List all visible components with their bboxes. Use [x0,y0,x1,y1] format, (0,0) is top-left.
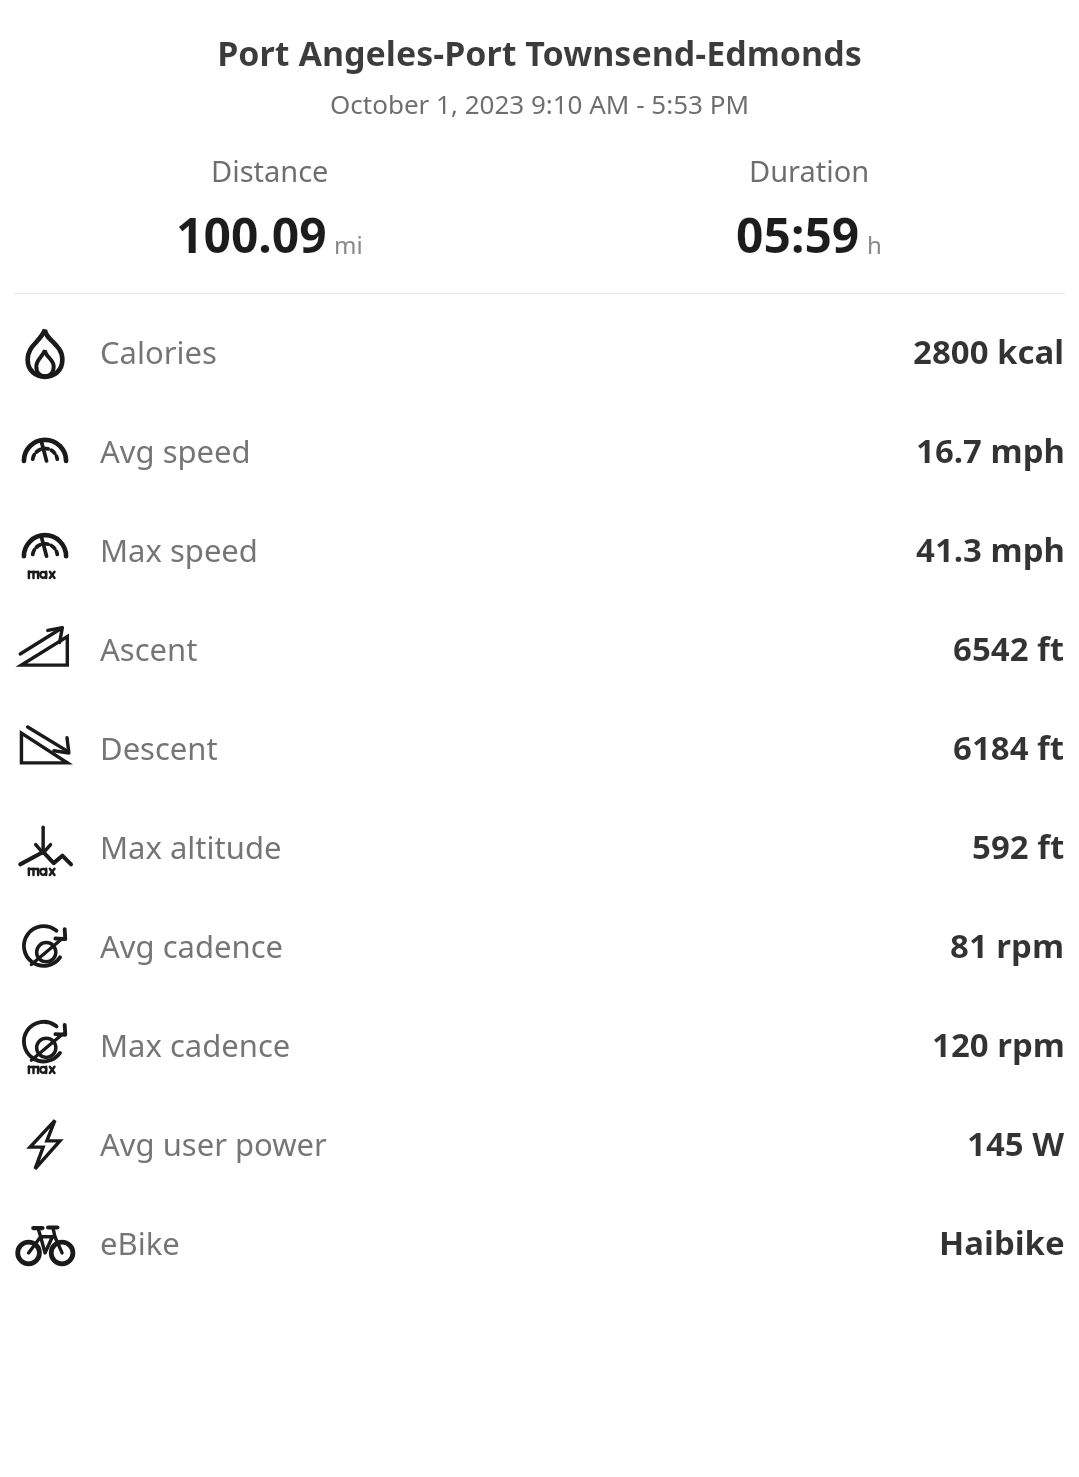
button[interactable]: Distance [0,151,539,267]
staticText: 05:59 [736,202,860,267]
staticText: 145 W [967,1121,1065,1166]
staticText: October 1, 2023 9:10 AM - 5:53 PM [14,86,1065,121]
other: Maximum altitude [14,816,76,878]
other: Calories [14,321,76,383]
button[interactable]: Descent [0,698,1079,797]
staticText: 16.7 mph [916,428,1065,473]
staticText: Max altitude [100,826,282,868]
staticText: Avg cadence [100,925,284,967]
staticText: Descent [100,727,218,769]
staticText: Max cadence [100,1024,291,1066]
staticText: 6542 ft [953,626,1065,671]
staticText: 2800 kcal [913,329,1065,374]
staticText: 592 ft [972,824,1065,869]
staticText: Duration [749,151,870,190]
button[interactable]: Average cadence [0,896,1079,995]
staticText: 41.3 mph [916,527,1065,572]
staticText: Avg user power [100,1123,327,1165]
staticText: Max speed [100,529,258,571]
staticText: h [867,228,882,261]
other: Ascent [14,618,76,680]
staticText: Avg speed [100,430,251,472]
button[interactable]: Duration [539,151,1079,267]
other: Average user power [14,1113,76,1175]
other: Maximum speed [14,519,76,581]
staticText: Port Angeles-Port Townsend-Edmonds [14,30,1065,76]
button[interactable]: Calories [0,302,1079,401]
button[interactable]: Maximum cadence [0,995,1079,1094]
other: Descent [14,717,76,779]
button[interactable]: Maximum altitude [0,797,1079,896]
other: eBike [14,1212,76,1274]
button[interactable]: Maximum speed [0,500,1079,599]
staticText: Ascent [100,628,198,670]
staticText: Haibike [939,1220,1065,1265]
staticText: 6184 ft [953,725,1065,770]
other: Average cadence [14,915,76,977]
staticText: 120 rpm [932,1022,1065,1067]
staticText: 81 rpm [950,923,1065,968]
staticText: mi [334,228,363,261]
button[interactable]: Average user power [0,1094,1079,1193]
other: Maximum cadence [14,1014,76,1076]
staticText: 100.09 [176,202,327,267]
staticText: Calories [100,331,217,373]
button[interactable]: Ascent [0,599,1079,698]
staticText: eBike [100,1222,180,1264]
other: Average speed [14,420,76,482]
button[interactable]: Average speed [0,401,1079,500]
staticText: Distance [211,151,329,190]
button[interactable]: eBike [0,1193,1079,1292]
